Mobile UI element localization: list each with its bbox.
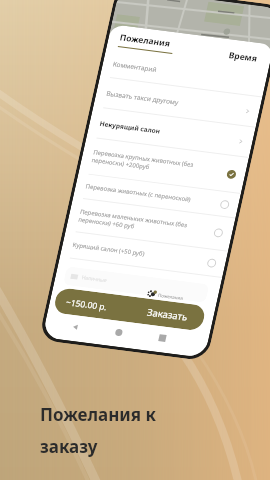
staticText: Пожелания [155, 281, 186, 312]
staticText: Вызвать такси другому [102, 58, 183, 138]
button[interactable]: Наличные [55, 205, 217, 364]
button[interactable]: Пожелания [142, 273, 188, 318]
staticText: Перевозка маленьких животных (без перено… [71, 152, 217, 296]
staticText: Перевозка животных (с переноской) [82, 127, 219, 262]
button[interactable]: Перевозка крупных животных (без переноск… [64, 68, 263, 264]
staticText: Заказать [141, 288, 194, 341]
staticText: Пожелания [114, 10, 176, 71]
button[interactable]: Back [66, 318, 84, 336]
staticText: Курящий салон (+50 руб) [69, 185, 206, 321]
staticText: заказу [40, 435, 98, 458]
button[interactable]: ~150.00 р. [42, 223, 217, 395]
button[interactable]: Некурящий салон [74, 37, 267, 228]
staticText: Некурящий салон [95, 93, 165, 161]
button[interactable]: Перевозка животных (с переноской) [63, 104, 250, 288]
button[interactable]: Комментарий [89, 0, 270, 167]
staticText: Пожелания к [40, 403, 156, 426]
staticText: Комментарий [108, 40, 162, 93]
staticText: Наличные [78, 263, 111, 295]
button[interactable]: Курящий салон (+50 руб) [49, 161, 238, 348]
button[interactable]: Перевозка маленьких животных (без перено… [52, 128, 248, 321]
staticText: Время [223, 37, 264, 77]
button[interactable]: Home [110, 324, 128, 341]
staticText: Перевозка крупных животных (без переноск… [84, 93, 230, 236]
button[interactable]: Вызвать такси другому [81, 7, 270, 197]
button[interactable]: Recent apps [153, 329, 171, 347]
staticText: ~150.00 р. [60, 278, 114, 331]
